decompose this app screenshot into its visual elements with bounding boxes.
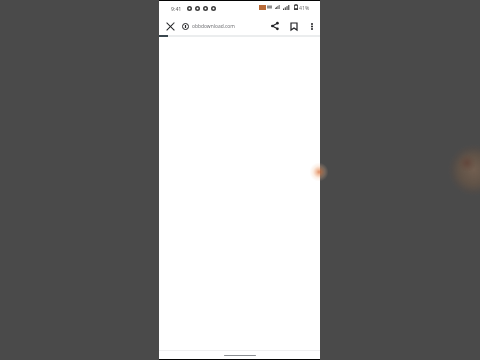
- staticText: 9:41: [171, 5, 182, 12]
- staticText: obbdownload.com: [192, 23, 235, 30]
- button[interactable]: More options: [303, 18, 320, 34]
- button[interactable]: Share: [266, 18, 284, 34]
- staticText: 41%: [299, 4, 310, 11]
- button[interactable]: obbdownload.com: [179, 17, 241, 35]
- button[interactable]: Bookmark: [284, 18, 303, 34]
- button[interactable]: Close: [163, 19, 177, 33]
